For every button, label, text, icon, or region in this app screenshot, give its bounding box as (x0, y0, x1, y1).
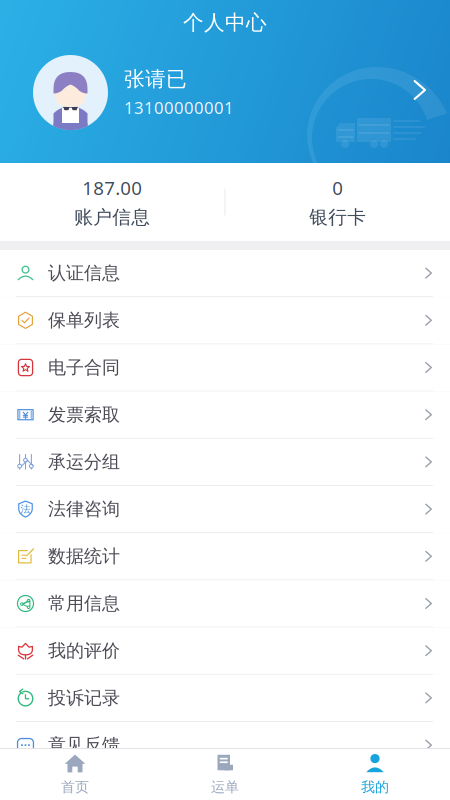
staticText: 保单列表 (48, 309, 120, 332)
staticText: 账户信息 (74, 205, 150, 229)
staticText: 电子合同 (48, 356, 120, 379)
button[interactable]: 承运分组 (0, 439, 450, 486)
staticText: 运单 (211, 778, 239, 796)
button[interactable]: 发票索取 (0, 392, 450, 439)
staticText: 13100000001 (124, 96, 234, 119)
staticText: 常用信息 (48, 592, 120, 615)
staticText: 0 (332, 175, 343, 200)
staticText: 我的 (361, 778, 389, 796)
button[interactable]: 投诉记录 (0, 675, 450, 722)
button[interactable]: 0 (225, 175, 450, 229)
staticText: 银行卡 (309, 205, 366, 229)
button[interactable]: 电子合同 (0, 344, 450, 392)
button[interactable]: 意见反馈 (0, 722, 450, 769)
staticText: 发票索取 (48, 403, 120, 426)
button[interactable]: 数据统计 (0, 533, 450, 580)
button[interactable]: 我的 (300, 753, 450, 796)
staticText: 张请已 (124, 66, 187, 92)
button[interactable]: 运单 (150, 753, 300, 796)
staticText: 法 (20, 503, 30, 515)
staticText: 首页 (61, 778, 89, 796)
staticText: 承运分组 (48, 451, 120, 473)
button[interactable]: 保单列表 (0, 297, 450, 344)
staticText: 个人中心 (183, 9, 267, 35)
staticText: 投诉记录 (48, 687, 120, 709)
button[interactable]: 我的评价 (0, 628, 450, 675)
button[interactable]: 认证信息 (0, 250, 450, 297)
button[interactable]: 常用信息 (0, 580, 450, 628)
staticText: 认证信息 (48, 262, 120, 284)
button[interactable]: 法 (0, 486, 450, 533)
button[interactable]: 首页 (0, 753, 150, 796)
staticText: 187.00 (82, 175, 142, 200)
button[interactable]: 187.00 (0, 175, 224, 229)
staticText: 数据统计 (48, 545, 120, 568)
staticText: 我的评价 (48, 639, 120, 662)
staticText: 意见反馈 (48, 734, 120, 756)
staticText: 法律咨询 (48, 498, 120, 520)
